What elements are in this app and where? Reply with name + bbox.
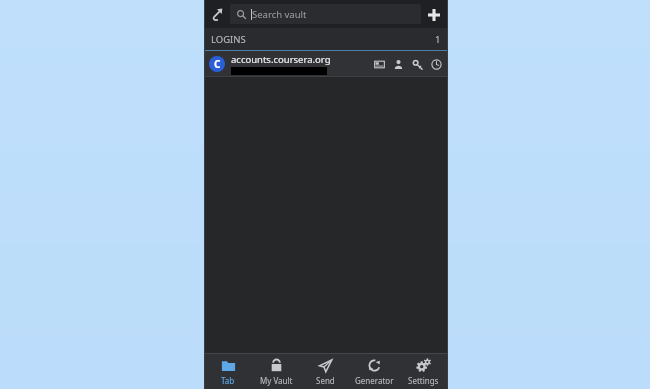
button[interactable]: Add item xyxy=(421,2,446,27)
button[interactable]: Open in new window xyxy=(204,1,230,27)
button[interactable]: Copy password xyxy=(410,57,424,71)
staticText: Send xyxy=(316,375,335,386)
staticText: 1 xyxy=(435,33,441,46)
button[interactable]: Show TOTP xyxy=(429,57,443,71)
staticText: LOGINS xyxy=(211,33,246,46)
button[interactable]: Copy username xyxy=(391,57,405,71)
staticText: Settings xyxy=(408,375,439,386)
staticText: accounts.coursera.org xyxy=(231,53,331,66)
staticText: C xyxy=(214,57,221,71)
button[interactable]: Tab xyxy=(204,355,252,389)
button[interactable]: C xyxy=(204,51,448,76)
staticText: Tab xyxy=(221,375,235,386)
staticText: My Vault xyxy=(260,375,293,386)
staticText: Search vault xyxy=(252,8,307,21)
staticText: Generator xyxy=(355,375,394,386)
button[interactable]: My Vault xyxy=(252,355,301,389)
button[interactable]: Search vault xyxy=(230,4,421,24)
button[interactable]: Settings xyxy=(399,355,448,389)
button[interactable]: Generator xyxy=(350,355,399,389)
button[interactable]: Copy card xyxy=(372,57,386,71)
button[interactable]: Send xyxy=(301,355,350,389)
